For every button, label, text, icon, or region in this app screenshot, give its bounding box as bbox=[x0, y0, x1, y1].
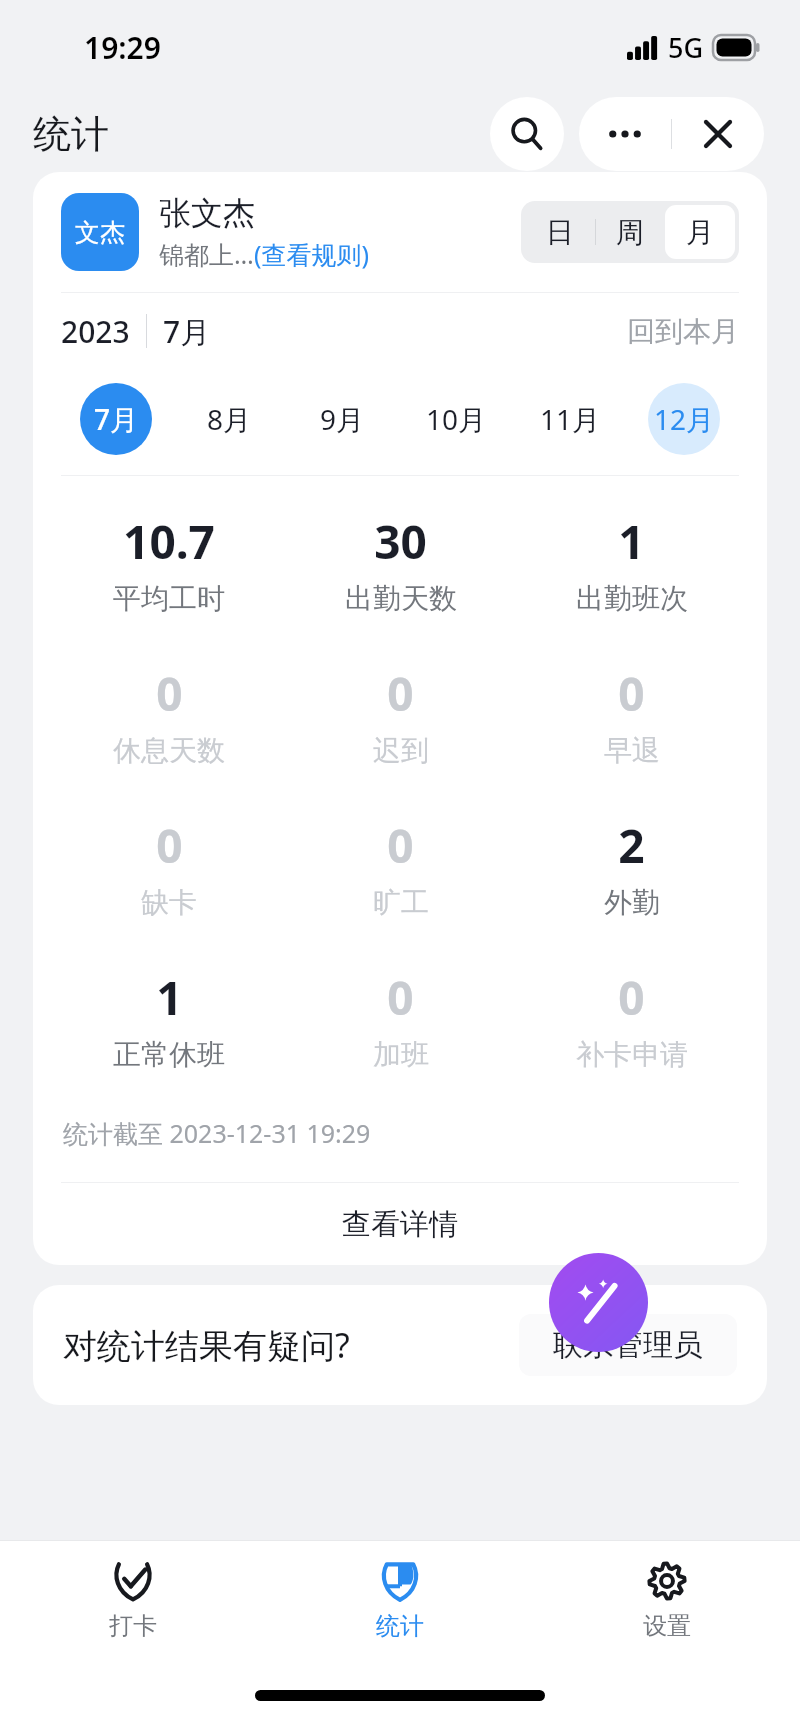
staticText: 9月 bbox=[320, 400, 365, 438]
button[interactable]: 统计 bbox=[266, 1541, 533, 1659]
button[interactable]: 回到本月 bbox=[627, 314, 739, 349]
button[interactable]: 打卡 bbox=[0, 1541, 266, 1659]
staticText: 12月 bbox=[654, 400, 715, 438]
button[interactable]: 8月 bbox=[172, 383, 285, 455]
button[interactable]: 1 bbox=[53, 966, 285, 1072]
staticText: 8月 bbox=[207, 400, 252, 438]
staticText: 周 bbox=[616, 215, 644, 250]
staticText: 查看详情 bbox=[342, 1206, 458, 1243]
staticText: 缺卡 bbox=[141, 885, 197, 920]
staticText: 出勤天数 bbox=[345, 581, 457, 616]
staticText: 外勤 bbox=[604, 885, 660, 920]
staticText: 加班 bbox=[373, 1037, 429, 1072]
button[interactable]: Search bbox=[490, 97, 564, 171]
button[interactable]: 12月 bbox=[627, 383, 741, 455]
staticText: 10.7 bbox=[123, 510, 215, 573]
button[interactable]: 查看详情 bbox=[33, 1183, 767, 1265]
button[interactable]: 2 bbox=[516, 814, 747, 920]
staticText: 早退 bbox=[604, 733, 660, 768]
staticText: 5G bbox=[668, 29, 704, 66]
button[interactable]: (查看规则) bbox=[254, 237, 370, 271]
staticText: 迟到 bbox=[373, 733, 429, 768]
staticText: 旷工 bbox=[373, 885, 429, 920]
staticText: 打卡 bbox=[109, 1611, 157, 1641]
staticText: 统计 bbox=[33, 110, 109, 158]
staticText: 1 bbox=[156, 966, 183, 1029]
staticText: 0 bbox=[387, 966, 414, 1029]
button[interactable]: 0 bbox=[53, 814, 285, 920]
staticText: 对统计结果有疑问? bbox=[63, 1322, 350, 1368]
staticText: 1 bbox=[618, 510, 645, 573]
button[interactable]: 0 bbox=[285, 662, 516, 768]
button[interactable]: 月 bbox=[665, 205, 735, 259]
staticText: 联系管理员 bbox=[553, 1326, 703, 1364]
staticText: 统计截至 2023-12-31 19:29 bbox=[63, 1116, 371, 1150]
staticText: 0 bbox=[618, 662, 645, 725]
staticText: 2 bbox=[618, 814, 645, 877]
button[interactable]: 0 bbox=[516, 966, 747, 1072]
staticText: 锦都上… bbox=[159, 237, 254, 271]
button[interactable]: 1 bbox=[516, 510, 747, 616]
button[interactable]: 联系管理员 bbox=[519, 1314, 737, 1376]
staticText: 10月 bbox=[426, 400, 487, 438]
button[interactable]: 日 bbox=[525, 205, 595, 259]
button[interactable]: More bbox=[579, 97, 671, 171]
staticText: 设置 bbox=[643, 1611, 691, 1641]
button[interactable]: 0 bbox=[516, 662, 747, 768]
button[interactable]: 11月 bbox=[513, 383, 627, 455]
button[interactable]: Close bbox=[672, 97, 764, 171]
button[interactable]: 周 bbox=[595, 205, 665, 259]
staticText: 文杰 bbox=[75, 217, 125, 248]
staticText: 19:29 bbox=[84, 27, 161, 68]
staticText: 0 bbox=[387, 814, 414, 877]
button[interactable]: 0 bbox=[285, 814, 516, 920]
staticText: 统计 bbox=[376, 1611, 424, 1641]
button[interactable]: 7月 bbox=[59, 383, 172, 455]
staticText: 0 bbox=[156, 662, 183, 725]
staticText: 日 bbox=[546, 215, 574, 250]
staticText: 7月 bbox=[163, 311, 211, 352]
button[interactable]: 10.7 bbox=[53, 510, 285, 616]
staticText: 正常休班 bbox=[113, 1037, 225, 1072]
staticText: 张文杰 bbox=[159, 193, 255, 233]
button[interactable]: AI assistant bbox=[549, 1253, 648, 1352]
staticText: 30 bbox=[374, 510, 427, 573]
button[interactable]: 10月 bbox=[399, 383, 513, 455]
staticText: 补卡申请 bbox=[576, 1037, 688, 1072]
button[interactable]: 0 bbox=[285, 966, 516, 1072]
staticText: 0 bbox=[618, 966, 645, 1029]
button[interactable]: 设置 bbox=[533, 1541, 800, 1659]
staticText: 休息天数 bbox=[113, 733, 225, 768]
staticText: 0 bbox=[156, 814, 183, 877]
staticText: 月 bbox=[686, 215, 714, 250]
staticText: 11月 bbox=[540, 400, 601, 438]
button[interactable]: 30 bbox=[285, 510, 516, 616]
button[interactable]: 0 bbox=[53, 662, 285, 768]
staticText: 7月 bbox=[94, 400, 139, 438]
staticText: 0 bbox=[387, 662, 414, 725]
staticText: 平均工时 bbox=[113, 581, 225, 616]
button[interactable]: 9月 bbox=[285, 383, 399, 455]
staticText: 2023 bbox=[61, 311, 130, 352]
staticText: 出勤班次 bbox=[576, 581, 688, 616]
